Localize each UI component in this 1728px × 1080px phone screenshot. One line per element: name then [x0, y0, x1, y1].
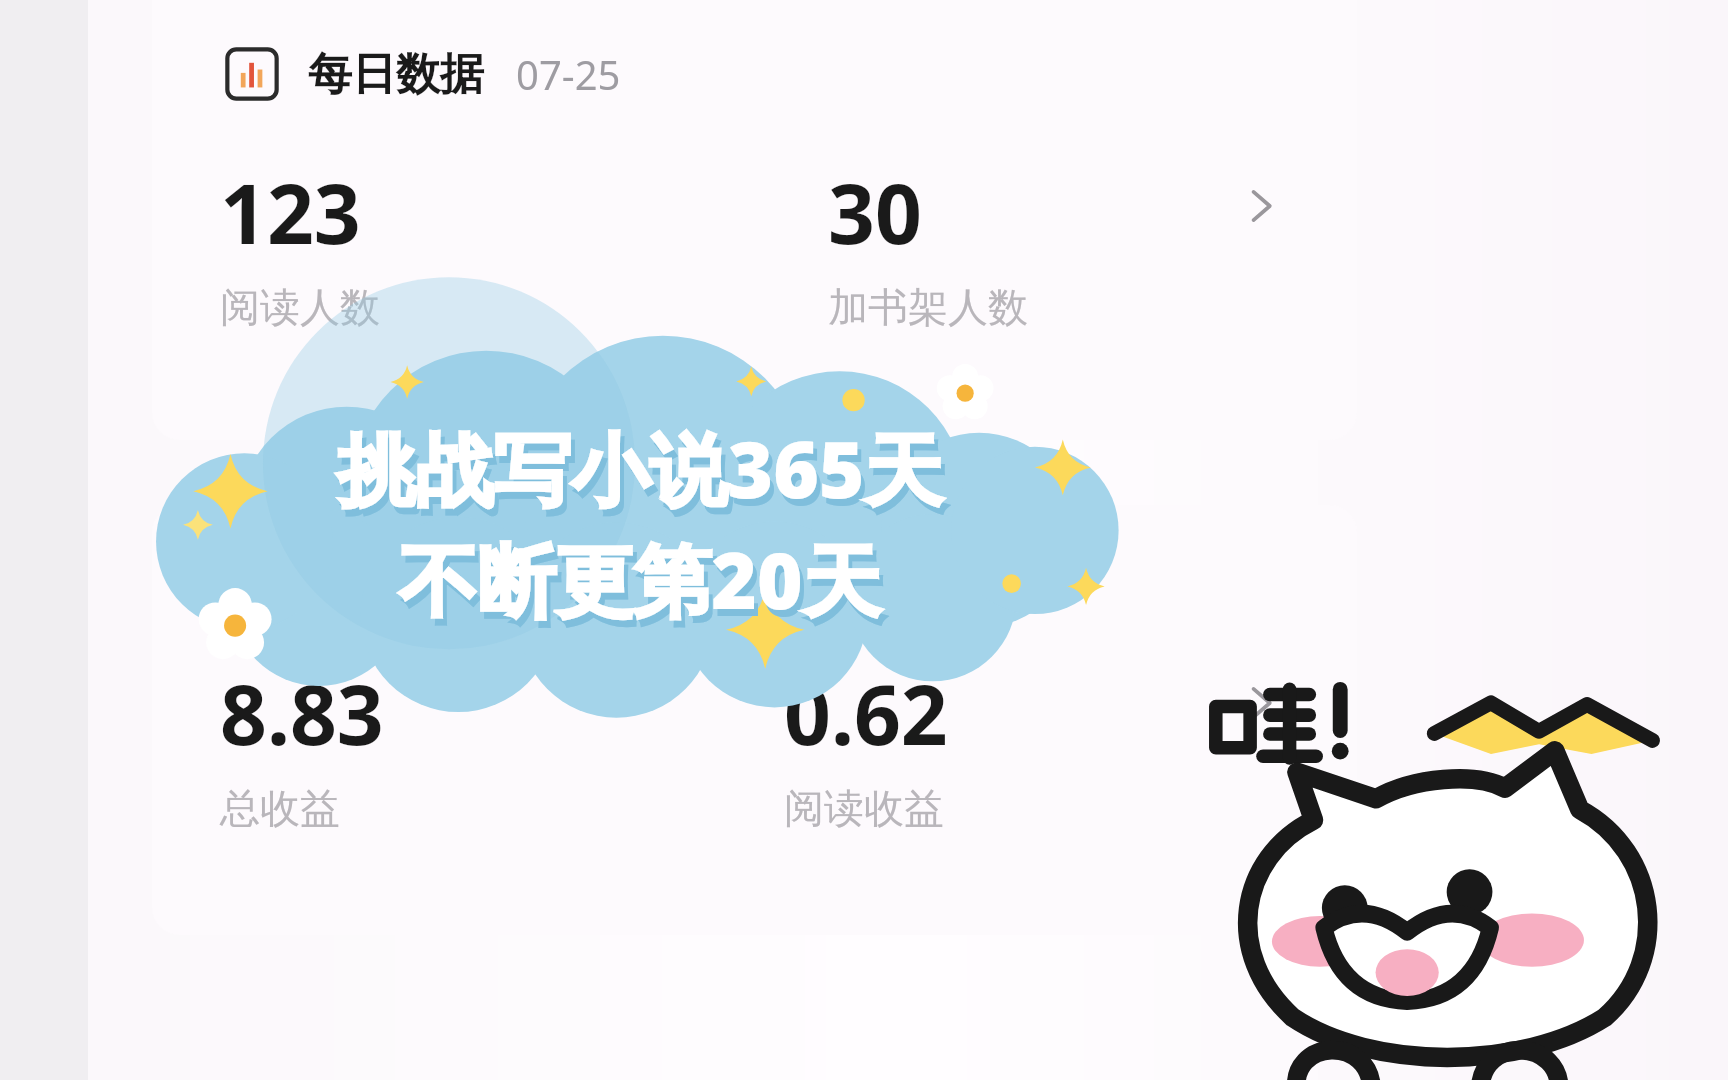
- staticText: 123: [220, 156, 361, 268]
- staticText: 挑战写小说365天: [337, 415, 943, 522]
- button[interactable]: 查看每日收益详情: [1233, 675, 1289, 731]
- staticText: 不断更第20天: [399, 526, 881, 633]
- staticText: 每日收益: [308, 544, 484, 599]
- button[interactable]: 每日数据: [152, 0, 1357, 440]
- staticText: 阅读人数: [220, 282, 380, 332]
- staticText: 加书架人数: [828, 282, 1028, 332]
- staticText: 阅读收益: [784, 783, 944, 833]
- staticText: 不断更第20天: [403, 533, 885, 640]
- staticText: 总收益: [220, 783, 340, 833]
- button[interactable]: 查看每日数据详情: [1233, 178, 1289, 234]
- staticText: 30: [828, 156, 922, 268]
- staticText: 8.83: [220, 657, 384, 769]
- staticText: 挑战写小说365天: [341, 422, 947, 529]
- button[interactable]: 每日收益: [152, 505, 1357, 935]
- staticText: 0.62: [784, 657, 948, 769]
- staticText: 07-25: [516, 47, 621, 101]
- staticText: 每日数据: [308, 47, 484, 102]
